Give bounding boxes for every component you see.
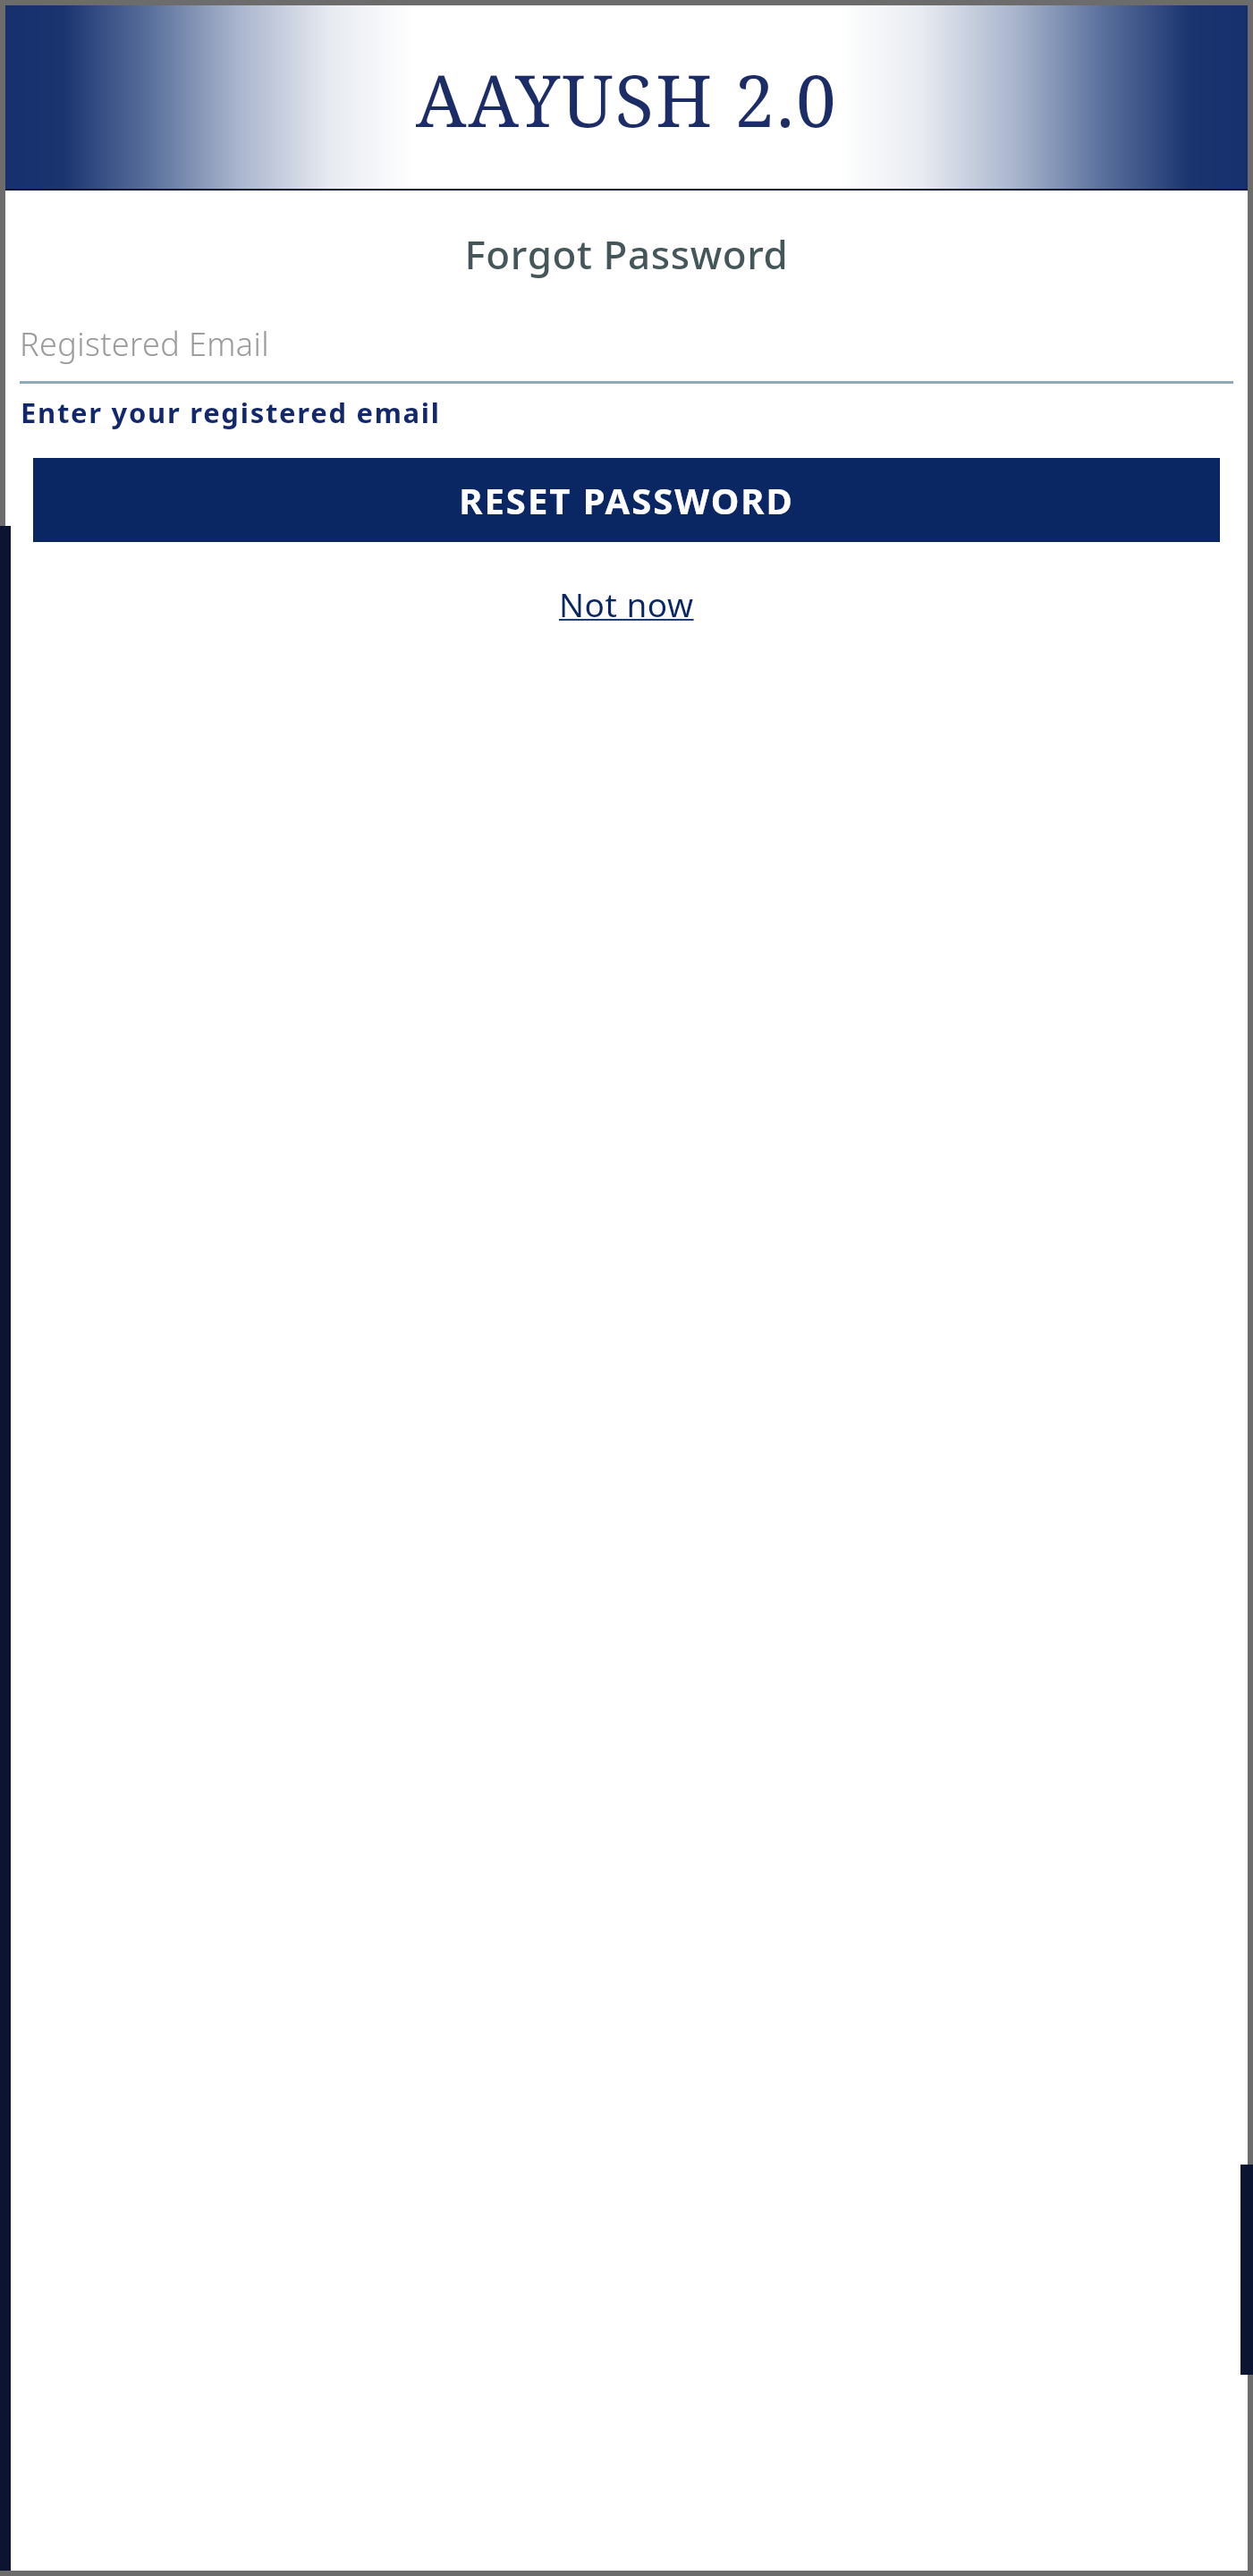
staticText: Not now [559,581,694,626]
button[interactable]: Not now [550,576,703,631]
staticText: RESET PASSWORD [459,476,794,524]
button[interactable]: Registered Email [20,320,1233,367]
button[interactable]: RESET PASSWORD [33,458,1220,542]
staticText: Enter your registered email [21,394,441,431]
staticText: AAYUSH 2.0 [416,50,838,148]
staticText: Registered Email [20,322,270,366]
staticText: Forgot Password [0,227,1253,281]
